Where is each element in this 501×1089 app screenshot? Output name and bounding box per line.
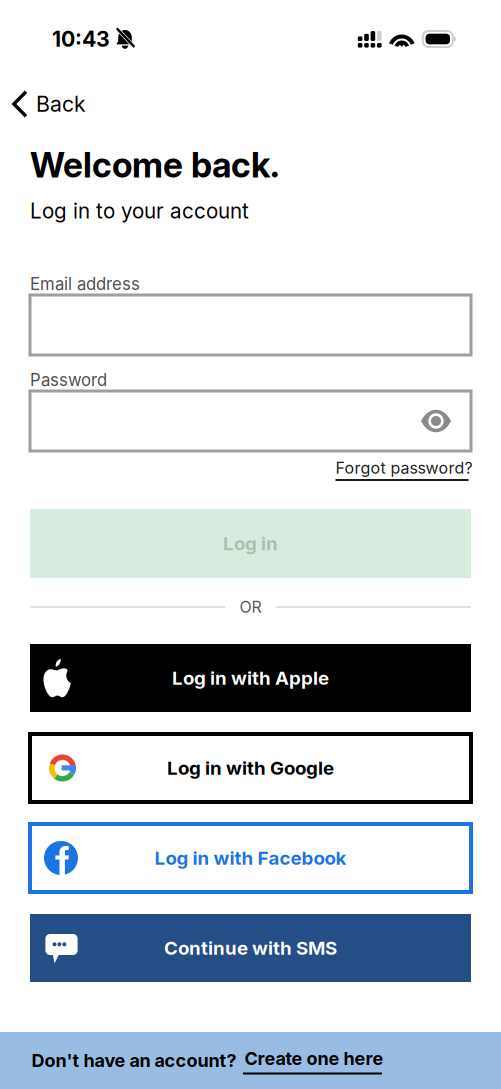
staticText: Log in with Facebook	[154, 847, 346, 869]
staticText: Log in	[223, 532, 278, 555]
button[interactable]: Log in with Google	[30, 734, 471, 802]
staticText: OR	[239, 597, 261, 617]
staticText: Create one here	[244, 1048, 383, 1069]
staticText: Log in with Google	[167, 757, 334, 779]
button[interactable]: Continue with SMS	[30, 914, 471, 982]
staticText: Back	[36, 91, 86, 117]
button[interactable]: Log in with Apple	[30, 644, 471, 712]
staticText: Welcome back.	[30, 144, 280, 186]
staticText: Forgot password?	[335, 458, 472, 478]
staticText: Log in to your account	[30, 198, 249, 223]
staticText: Email address	[30, 274, 140, 294]
staticText: Password	[30, 370, 107, 390]
button[interactable]: Log in	[30, 509, 471, 578]
button[interactable]: Log in with Facebook	[30, 824, 471, 892]
button[interactable]: Back	[0, 78, 100, 130]
staticText: Continue with SMS	[164, 937, 337, 959]
button[interactable]: Don't have an account?	[0, 1032, 501, 1089]
staticText: Log in with Apple	[172, 667, 329, 689]
staticText: 10:43	[52, 26, 110, 52]
staticText: Don't have an account?	[31, 1050, 236, 1071]
button[interactable]: Forgot password?	[337, 459, 471, 481]
